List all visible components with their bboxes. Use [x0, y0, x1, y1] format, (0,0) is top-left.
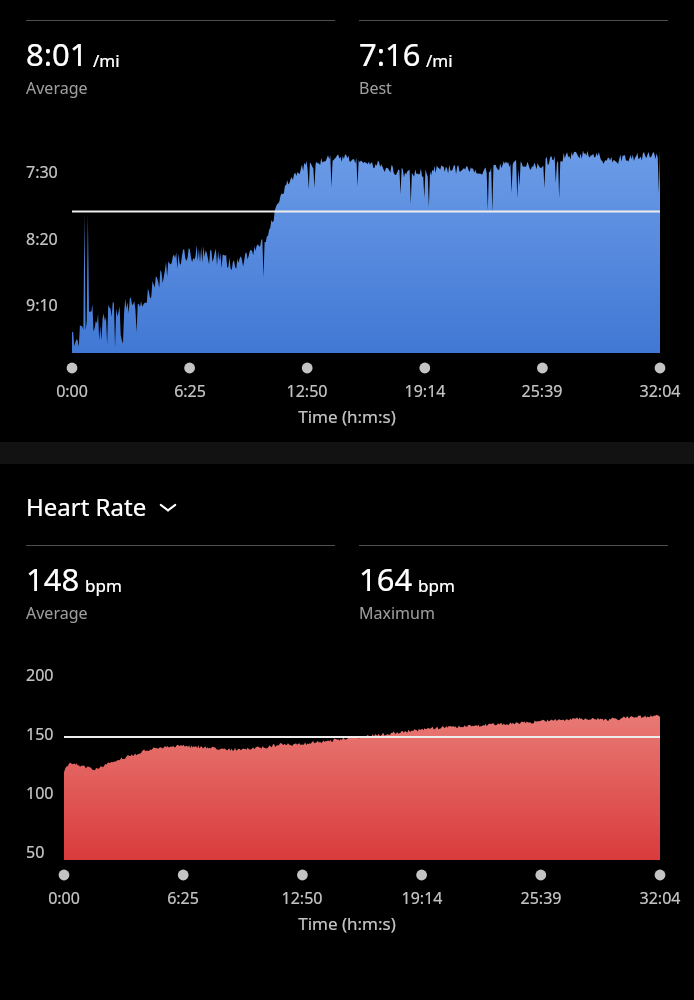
staticText: 7:30: [26, 161, 58, 183]
staticText: 6:25: [160, 380, 220, 402]
button[interactable]: 7:16: [359, 20, 668, 99]
staticText: Heart Rate: [26, 490, 147, 523]
staticText: Maximum: [359, 602, 435, 624]
staticText: 8:20: [26, 228, 58, 250]
staticText: 148: [26, 558, 80, 600]
staticText: 7:16: [359, 33, 421, 75]
staticText: 200: [26, 664, 54, 686]
staticText: 19:14: [395, 380, 455, 402]
staticText: 150: [26, 723, 54, 745]
staticText: bpm: [85, 574, 122, 597]
staticText: 25:39: [512, 380, 572, 402]
staticText: Average: [26, 77, 88, 99]
staticText: 12:50: [272, 887, 332, 909]
staticText: 32:04: [630, 887, 690, 909]
staticText: 164: [359, 558, 413, 600]
staticText: 19:14: [392, 887, 452, 909]
staticText: 0:00: [34, 887, 94, 909]
staticText: bpm: [418, 574, 455, 597]
staticText: Time (h:m:s): [0, 912, 694, 935]
staticText: Best: [359, 77, 392, 99]
staticText: 100: [26, 782, 54, 804]
button[interactable]: Heart Rate: [26, 490, 181, 523]
staticText: /mi: [426, 49, 453, 72]
button[interactable]: 164: [359, 545, 668, 624]
staticText: Time (h:m:s): [0, 405, 694, 428]
staticText: 25:39: [511, 887, 571, 909]
button[interactable]: 8:01: [26, 20, 335, 99]
button[interactable]: 148: [26, 545, 335, 624]
staticText: Average: [26, 602, 88, 624]
staticText: 50: [26, 841, 45, 860]
other: Collapse Heart Rate: [155, 494, 181, 520]
staticText: 6:25: [153, 887, 213, 909]
staticText: 9:10: [26, 294, 58, 316]
staticText: 12:50: [277, 380, 337, 402]
staticText: /mi: [93, 49, 120, 72]
staticText: 0:00: [42, 380, 102, 402]
staticText: 32:04: [630, 380, 690, 402]
staticText: 8:01: [26, 33, 88, 75]
